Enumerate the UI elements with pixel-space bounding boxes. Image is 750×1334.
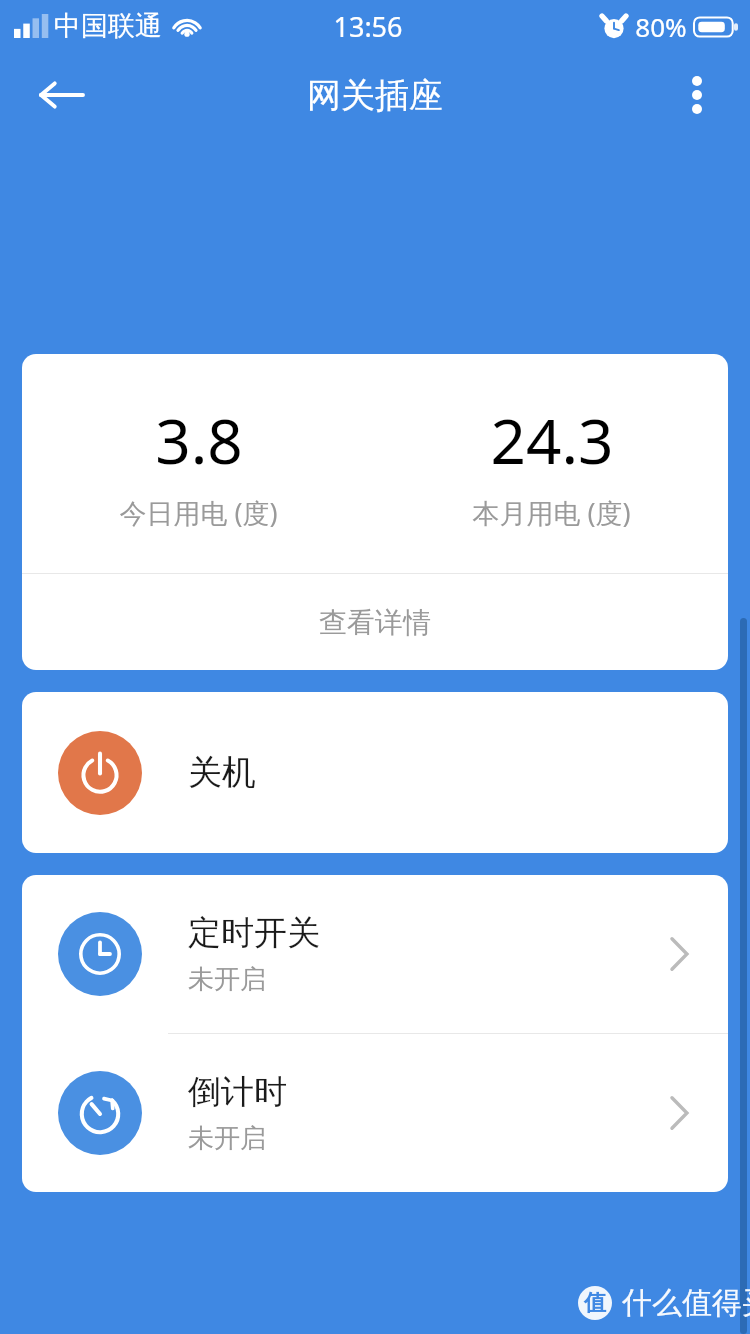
button[interactable]: 关机: [22, 692, 728, 853]
staticText: 3.8: [155, 398, 243, 482]
staticText: 定时开关: [188, 912, 320, 954]
staticText: 本月用电 (度): [472, 494, 631, 531]
staticText: 网关插座: [307, 74, 443, 117]
button[interactable]: 查看详情: [22, 574, 728, 670]
staticText: 未开启: [188, 1122, 266, 1155]
staticText: 今日用电 (度): [119, 494, 278, 531]
staticText: 80%: [635, 9, 687, 44]
button[interactable]: 倒计时: [22, 1034, 728, 1192]
button[interactable]: 返回: [30, 64, 92, 126]
staticText: 值: [584, 1289, 606, 1317]
staticText: 24.3: [490, 398, 614, 482]
staticText: 中国联通: [54, 9, 162, 43]
staticText: 查看详情: [319, 605, 431, 640]
staticText: 什么值得买: [622, 1284, 750, 1322]
staticText: 未开启: [188, 963, 266, 996]
button[interactable]: 定时开关: [22, 875, 728, 1033]
staticText: 关机: [188, 751, 256, 794]
button[interactable]: 更多选项: [668, 66, 726, 124]
staticText: 13:56: [333, 8, 403, 45]
staticText: 倒计时: [188, 1071, 287, 1113]
